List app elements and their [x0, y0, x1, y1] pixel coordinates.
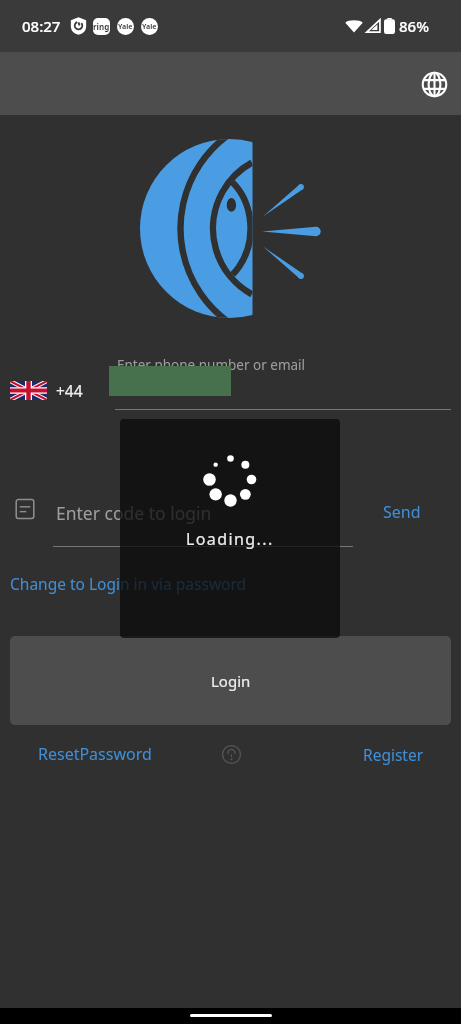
staticText: Yale: [118, 22, 133, 32]
staticText: Send: [383, 501, 421, 523]
staticText: 86%: [399, 16, 429, 36]
button[interactable]: Login: [10, 636, 451, 725]
staticText: ring: [93, 21, 110, 32]
staticText: Loading...: [186, 528, 274, 550]
button[interactable]: Register: [363, 744, 424, 765]
staticText: +44: [56, 380, 83, 401]
staticText: Yale: [142, 22, 157, 32]
staticText: Enter code to login: [56, 501, 212, 525]
staticText: Enter phone number or email: [117, 356, 306, 374]
staticText: Change to Login in via password: [10, 573, 247, 594]
button[interactable]: Send: [383, 501, 421, 523]
staticText: Login: [211, 671, 251, 691]
staticText: Register: [363, 744, 424, 765]
button[interactable]: ResetPassword: [38, 743, 152, 765]
staticText: 08:27: [22, 16, 61, 36]
staticText: ResetPassword: [38, 743, 152, 765]
button[interactable]: Help: [215, 738, 247, 770]
button[interactable]: +44: [10, 380, 83, 401]
button[interactable]: Change language: [411, 61, 457, 107]
button[interactable]: Change to Login in via password: [10, 573, 247, 594]
